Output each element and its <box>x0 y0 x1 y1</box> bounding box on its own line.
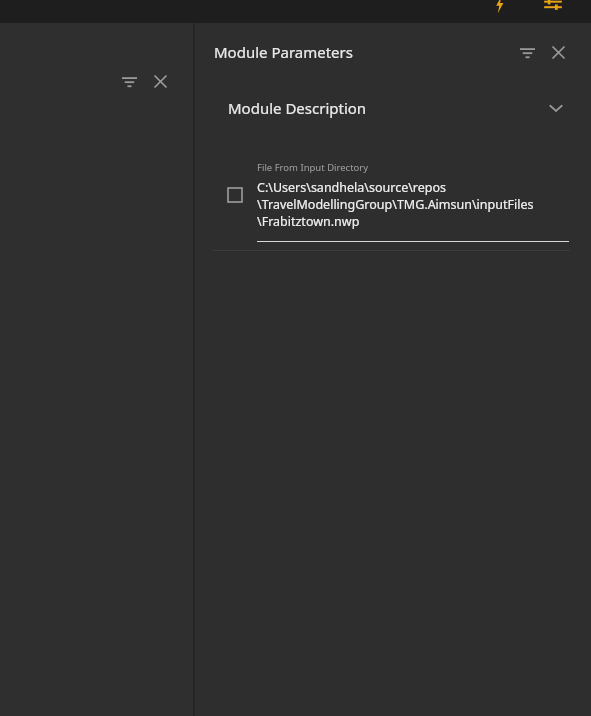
button[interactable]: Module Description <box>213 81 569 135</box>
button[interactable]: Close <box>545 39 571 65</box>
staticText: Module Description <box>228 98 367 118</box>
button[interactable]: Filter <box>116 68 142 94</box>
other: Expand <box>543 95 569 121</box>
button[interactable]: Filter <box>514 39 540 65</box>
staticText: Module Parameters <box>214 42 353 62</box>
button[interactable]: Settings <box>540 0 566 15</box>
button[interactable]: Toggle parameter <box>224 184 246 206</box>
button[interactable]: Close <box>147 68 173 94</box>
staticText: File From Input Directory <box>257 161 369 174</box>
button[interactable]: Run <box>488 0 512 15</box>
staticText: C:\Users\sandhela\source\repos \TravelMo… <box>257 179 534 230</box>
